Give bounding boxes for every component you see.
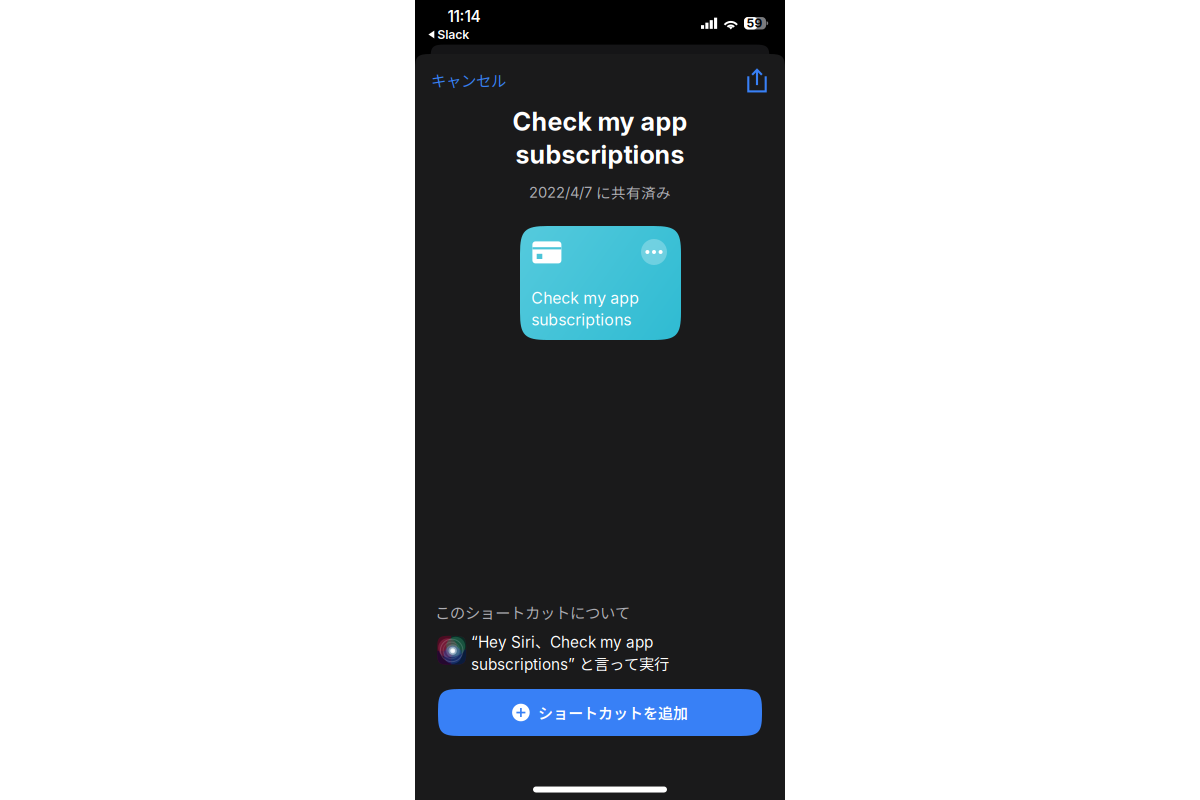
button[interactable]: Check my app subscriptions: [520, 226, 681, 340]
staticText: ショートカットを追加: [538, 702, 688, 723]
staticText: 59: [746, 16, 762, 30]
staticText: Slack: [437, 27, 469, 42]
staticText: Check my app: [512, 106, 687, 137]
staticText: “Hey Siri、Check my app subscriptions” と言…: [471, 630, 669, 674]
staticText: 2022/4/7 に共有済み: [529, 181, 671, 203]
button[interactable]: ショートカットを追加: [438, 689, 762, 736]
staticText: 11:14: [447, 7, 480, 26]
staticText: Check my app subscriptions: [531, 288, 639, 329]
staticText: subscriptions: [515, 139, 684, 170]
button[interactable]: Share: [737, 60, 777, 100]
staticText: キャンセル: [431, 69, 506, 91]
button[interactable]: キャンセル: [425, 62, 523, 98]
staticText: このショートカットについて: [435, 601, 630, 623]
